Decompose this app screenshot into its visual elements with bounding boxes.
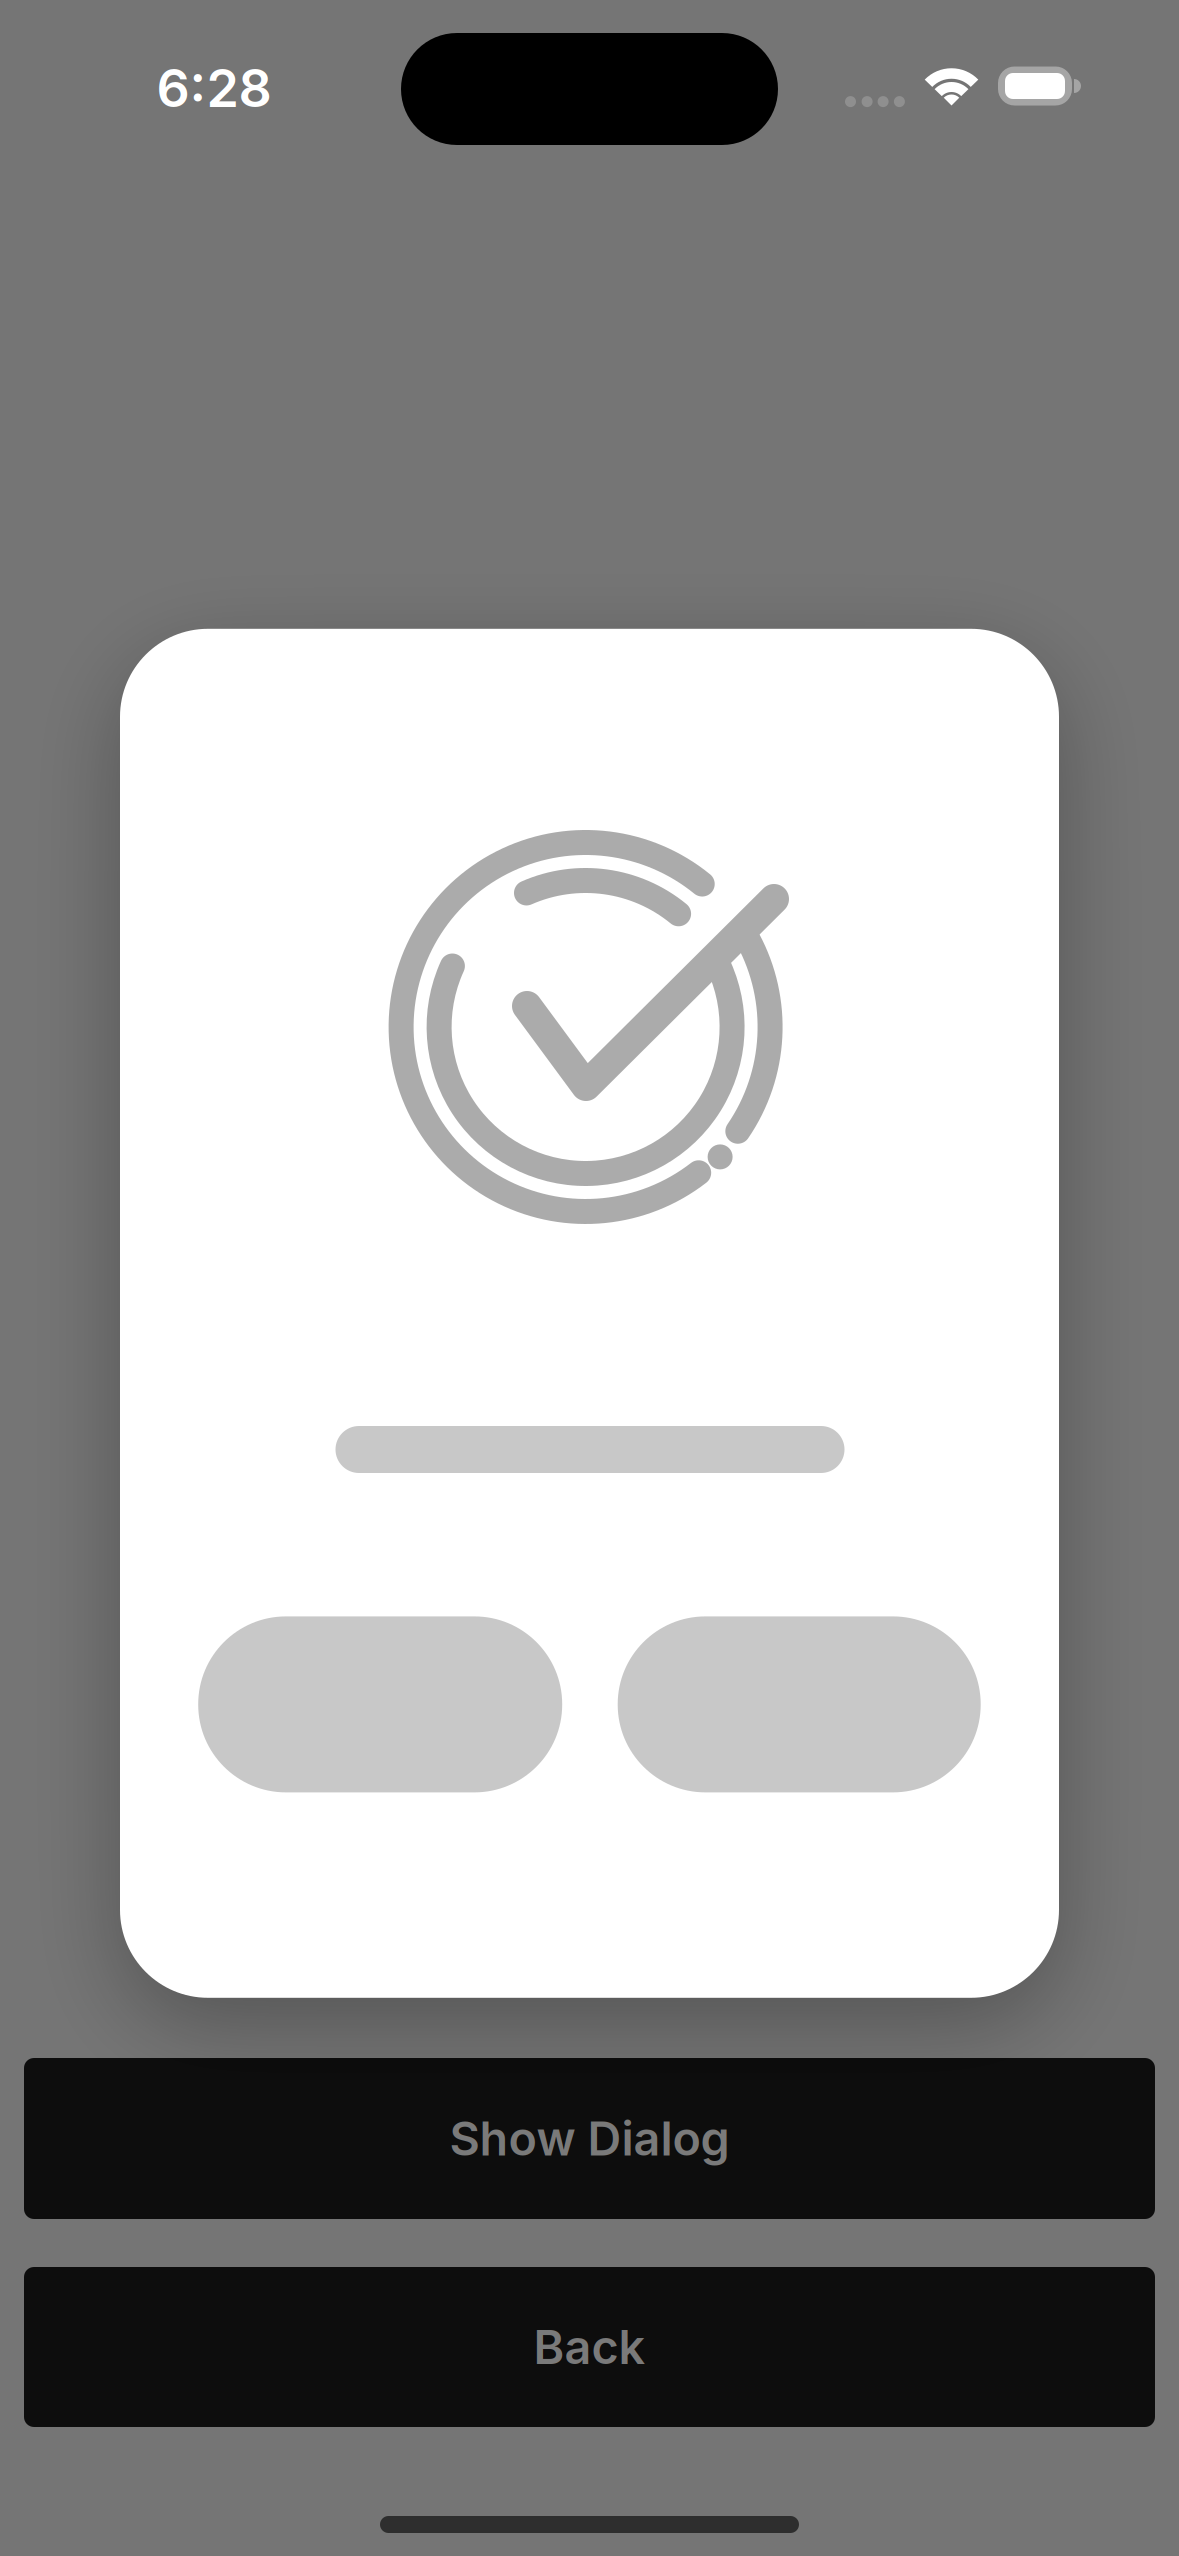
button[interactable]: Show Dialog (24, 2058, 1155, 2219)
button[interactable]: Back (24, 2267, 1155, 2427)
button[interactable]: OK (618, 1616, 981, 1792)
staticText: 6:28 (156, 57, 271, 119)
staticText: Show Dialog (449, 2111, 729, 2166)
button[interactable]: Cancel (198, 1616, 562, 1792)
staticText: Back (533, 2319, 645, 2375)
